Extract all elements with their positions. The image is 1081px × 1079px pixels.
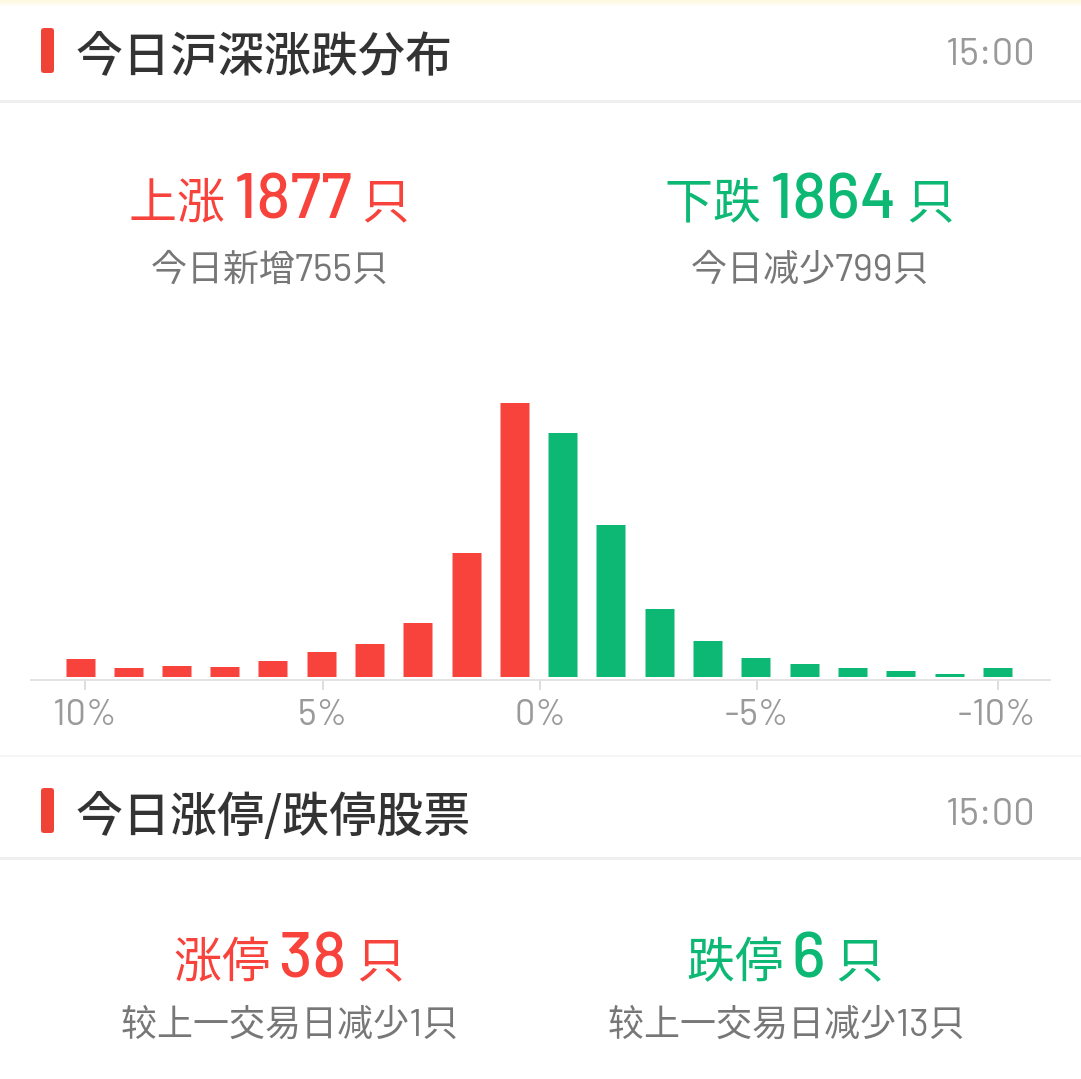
staticText: 38 bbox=[279, 913, 347, 990]
staticText: 6 bbox=[792, 913, 826, 990]
staticText: 较上一交易日减少13只 bbox=[608, 994, 965, 1046]
staticText: 今日沪深涨跌分布 bbox=[76, 16, 452, 84]
staticText: 1877 bbox=[234, 154, 352, 231]
staticText: 今日减少799只 bbox=[691, 239, 929, 291]
staticText: 上涨 bbox=[129, 162, 226, 232]
staticText: 今日涨停/跌停股票 bbox=[76, 776, 471, 844]
staticText: 只 bbox=[907, 162, 956, 232]
staticText: -10% bbox=[958, 689, 1036, 732]
button[interactable]: 今日涨停/跌停股票 bbox=[0, 760, 1081, 860]
staticText: 涨停 bbox=[174, 921, 271, 991]
button[interactable]: 今日沪深涨跌分布 bbox=[0, 0, 1081, 100]
staticText: 0% bbox=[515, 689, 566, 732]
staticText: 15:00 bbox=[946, 27, 1035, 73]
staticText: 1864 bbox=[770, 154, 897, 231]
staticText: 今日新增755只 bbox=[151, 239, 389, 291]
staticText: 跌停 bbox=[687, 921, 784, 991]
staticText: 只 bbox=[836, 921, 885, 991]
staticText: 只 bbox=[357, 921, 406, 991]
staticText: 10% bbox=[53, 689, 117, 732]
staticText: -5% bbox=[725, 689, 789, 732]
staticText: 5% bbox=[298, 689, 348, 732]
staticText: 只 bbox=[362, 162, 411, 232]
staticText: 下跌 bbox=[665, 162, 762, 232]
staticText: 15:00 bbox=[946, 787, 1035, 833]
staticText: 较上一交易日减少1只 bbox=[121, 994, 459, 1046]
